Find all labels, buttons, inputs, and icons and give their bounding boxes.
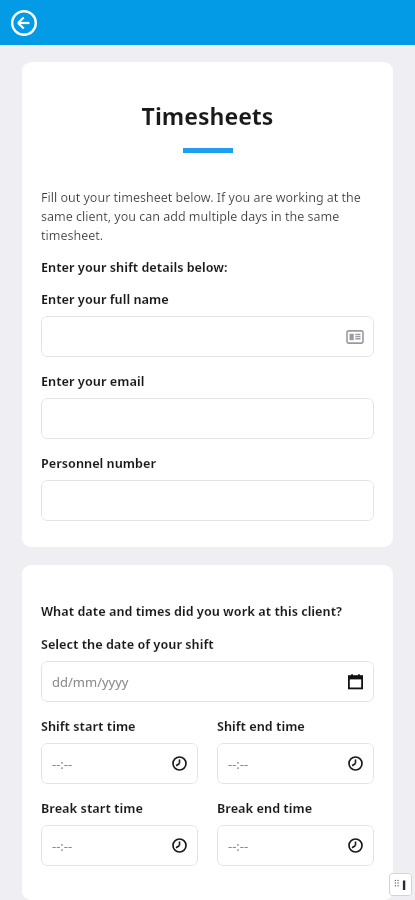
- other: Pick date: [348, 674, 363, 689]
- staticText: Select the date of your shift: [41, 636, 374, 653]
- button[interactable]: --:--: [217, 825, 374, 866]
- button[interactable]: Back: [8, 7, 40, 39]
- button[interactable]: Resize: [389, 873, 412, 896]
- staticText: dd/mm/yyyy: [52, 673, 129, 691]
- other: Pick time: [348, 756, 363, 771]
- staticText: Fill out your timesheet below. If you ar…: [41, 189, 374, 244]
- staticText: --:--: [52, 755, 73, 773]
- button[interactable]: --:--: [217, 743, 374, 784]
- staticText: Break end time: [217, 800, 374, 817]
- staticText: --:--: [228, 755, 249, 773]
- staticText: Enter your shift details below:: [41, 259, 374, 276]
- staticText: --:--: [228, 837, 249, 855]
- button[interactable]: --:--: [41, 825, 198, 866]
- other: Pick time: [172, 756, 187, 771]
- staticText: --:--: [52, 837, 73, 855]
- staticText: Personnel number: [41, 455, 374, 472]
- other: Pick time: [348, 838, 363, 853]
- button[interactable]: dd/mm/yyyy: [41, 661, 374, 702]
- staticText: Enter your email: [41, 373, 374, 390]
- button[interactable]: Autofill contact: [41, 316, 374, 357]
- staticText: Timesheets: [41, 100, 374, 131]
- button[interactable]: [41, 480, 374, 521]
- staticText: Break start time: [41, 800, 198, 817]
- other: Pick time: [172, 838, 187, 853]
- staticText: Shift start time: [41, 718, 198, 735]
- other: Autofill contact: [347, 329, 363, 345]
- staticText: Enter your full name: [41, 291, 374, 308]
- button[interactable]: --:--: [41, 743, 198, 784]
- staticText: What date and times did you work at this…: [41, 603, 374, 620]
- button[interactable]: [41, 398, 374, 439]
- staticText: Shift end time: [217, 718, 374, 735]
